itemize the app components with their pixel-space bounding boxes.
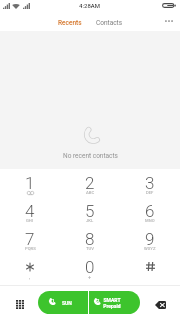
- button[interactable]: 0: [60, 253, 120, 281]
- button[interactable]: 1: [0, 169, 60, 197]
- staticText: ABC: [86, 190, 95, 195]
- button[interactable]: Show dialpad: [11, 296, 28, 313]
- staticText: 1: [52, 298, 55, 303]
- button[interactable]: [120, 253, 180, 281]
- staticText: PQRS: [25, 246, 36, 251]
- staticText: DEF: [146, 190, 154, 195]
- staticText: 6: [145, 201, 155, 221]
- staticText: +: [88, 274, 92, 280]
- staticText: 2: [85, 173, 95, 193]
- staticText: 2: [97, 298, 100, 303]
- staticText: No recent contacts: [63, 152, 118, 160]
- staticText: WXYZ: [144, 246, 156, 251]
- staticText: 9: [145, 229, 155, 249]
- staticText: 0: [85, 257, 95, 277]
- button[interactable]: More options: [161, 13, 177, 29]
- staticText: SUN: [62, 300, 72, 306]
- button[interactable]: 9: [120, 225, 180, 253]
- button[interactable]: 5: [60, 197, 120, 225]
- button[interactable]: 7: [0, 225, 60, 253]
- button[interactable]: 3: [120, 169, 180, 197]
- button[interactable]: Recents: [50, 16, 90, 30]
- staticText: Recents: [58, 19, 82, 27]
- staticText: 5: [85, 201, 95, 221]
- button[interactable]: 6: [120, 197, 180, 225]
- staticText: ,: [29, 274, 31, 280]
- staticText: 7: [25, 229, 35, 249]
- staticText: 1: [25, 173, 35, 193]
- staticText: 8: [85, 229, 95, 249]
- staticText: JKL: [86, 218, 94, 223]
- staticText: 4:28AM: [79, 2, 101, 9]
- button[interactable]: Backspace: [152, 296, 169, 313]
- staticText: 3: [145, 173, 155, 193]
- staticText: Contacts: [96, 19, 123, 27]
- button[interactable]: 8: [60, 225, 120, 253]
- button[interactable]: 4: [0, 197, 60, 225]
- staticText: TUV: [86, 246, 94, 251]
- staticText: GHI: [26, 218, 34, 223]
- button[interactable]: 1: [38, 291, 88, 314]
- button[interactable]: Contacts: [90, 16, 131, 30]
- staticText: SMART Prepaid: [103, 297, 121, 309]
- button[interactable]: 2: [89, 291, 140, 314]
- button[interactable]: ,: [0, 253, 60, 281]
- staticText: 4: [25, 201, 35, 221]
- staticText: MNO: [145, 218, 155, 223]
- button[interactable]: 2: [60, 169, 120, 197]
